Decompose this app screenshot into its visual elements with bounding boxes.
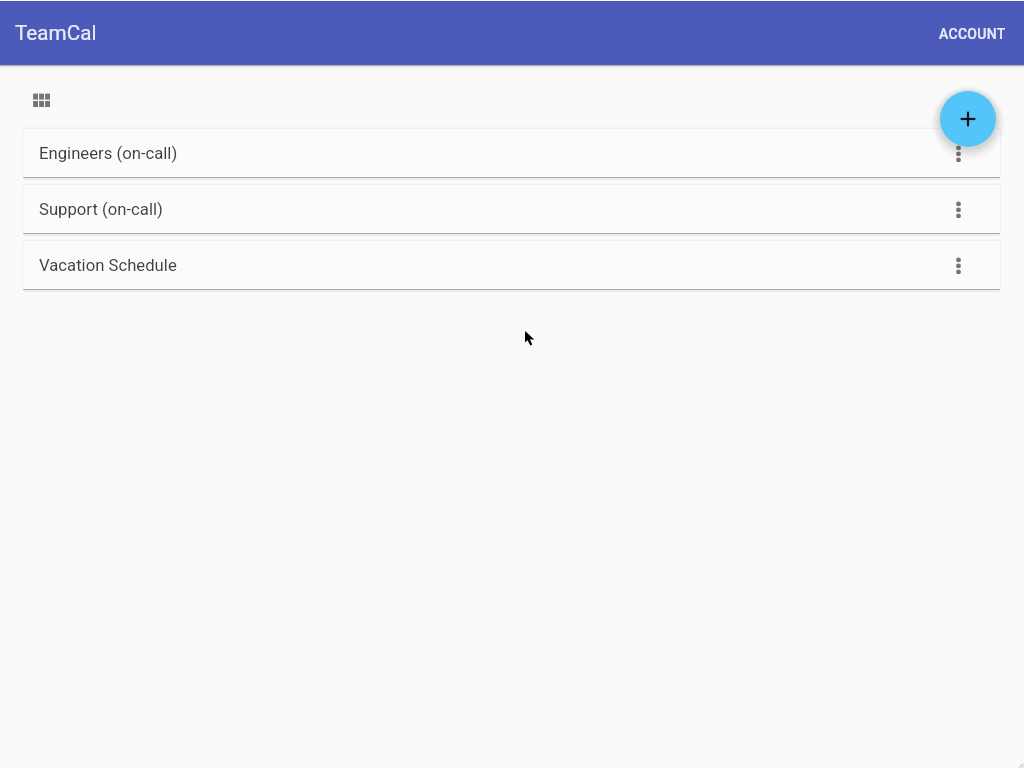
button[interactable]: Grid view [29, 89, 53, 113]
staticText: TeamCal [15, 21, 97, 45]
button[interactable]: Engineers (on-call) [23, 129, 1000, 177]
button[interactable]: ACCOUNT [930, 17, 1013, 50]
staticText: Support (on-call) [39, 200, 163, 220]
button[interactable]: Add calendar [940, 91, 996, 147]
button[interactable]: More options [946, 141, 970, 165]
button[interactable]: More options [946, 197, 970, 221]
button[interactable]: Support (on-call) [23, 185, 1000, 233]
button[interactable]: Vacation Schedule [23, 241, 1000, 289]
staticText: Vacation Schedule [39, 256, 177, 276]
button[interactable]: More options [946, 253, 970, 277]
staticText: ACCOUNT [939, 26, 1006, 42]
staticText: Engineers (on-call) [39, 144, 178, 164]
